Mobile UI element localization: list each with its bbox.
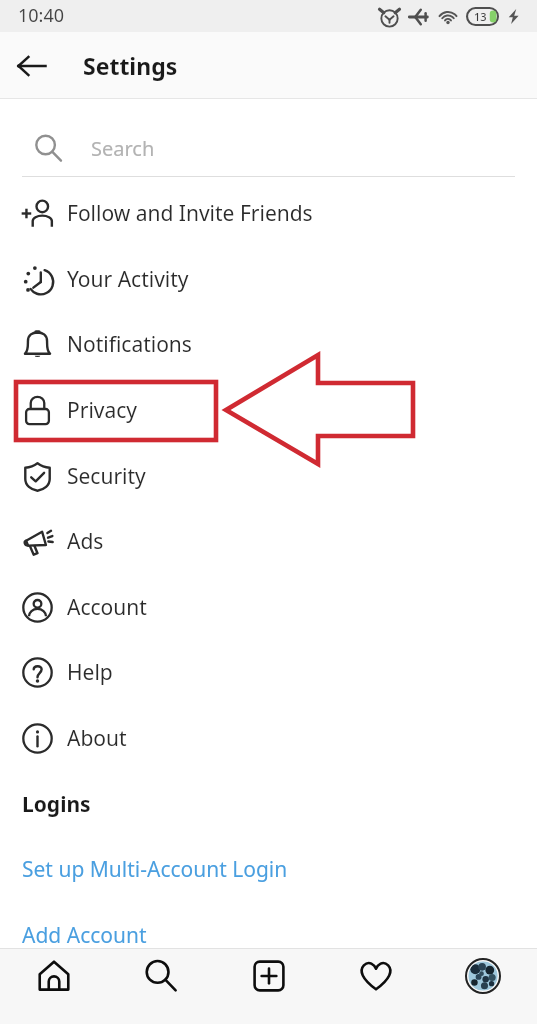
staticText: 10:40 — [18, 3, 65, 28]
button[interactable]: Create — [241, 948, 297, 1004]
button[interactable]: Your Activity — [0, 246, 537, 312]
staticText: Notifications — [67, 330, 192, 359]
button[interactable]: Activity — [348, 948, 404, 1004]
button[interactable]: Home — [26, 948, 82, 1004]
staticText: Account — [67, 593, 147, 622]
button[interactable]: Follow and Invite Friends — [0, 180, 537, 246]
button[interactable]: Set up Multi-Account Login — [0, 836, 537, 902]
button[interactable]: Search — [133, 948, 189, 1004]
staticText: Set up Multi-Account Login — [22, 855, 288, 884]
button[interactable]: Notifications — [0, 311, 537, 377]
button[interactable]: Help — [0, 639, 537, 705]
button[interactable]: Account — [0, 574, 537, 640]
staticText: Settings — [83, 50, 178, 81]
button[interactable]: Search — [0, 99, 537, 180]
button[interactable]: Add Account — [0, 902, 537, 968]
button[interactable]: Ads — [0, 508, 537, 574]
button[interactable]: Security — [0, 443, 537, 509]
button[interactable]: About — [0, 705, 537, 771]
button[interactable]: Back — [8, 42, 56, 90]
staticText: Logins — [22, 790, 91, 819]
staticText: Security — [67, 462, 146, 491]
staticText: Follow and Invite Friends — [67, 199, 313, 228]
staticText: Search — [91, 135, 155, 162]
staticText: Privacy — [67, 396, 138, 425]
staticText: Add Account — [22, 921, 147, 950]
staticText: Ads — [67, 527, 104, 556]
button[interactable]: Privacy — [0, 377, 537, 443]
staticText: About — [67, 724, 127, 753]
staticText: Your Activity — [67, 265, 189, 294]
staticText: 13 — [474, 9, 487, 24]
button[interactable]: Profile — [455, 948, 511, 1004]
staticText: Help — [67, 658, 113, 687]
